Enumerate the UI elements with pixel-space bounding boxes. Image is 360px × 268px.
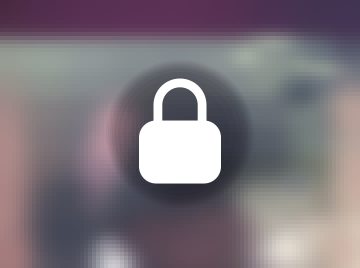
button[interactable]: Locked (105, 59, 255, 209)
